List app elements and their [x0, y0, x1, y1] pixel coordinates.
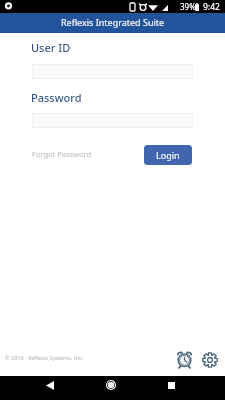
button[interactable]: Settings: [202, 352, 218, 368]
button[interactable]: Home: [99, 376, 123, 394]
staticText: 9:42: [203, 1, 220, 13]
staticText: Login: [156, 149, 180, 161]
staticText: © 2016 - Reflexis Systems, Inc.: [5, 354, 84, 361]
staticText: 39%: [180, 1, 196, 12]
button[interactable]: Back: [38, 376, 62, 394]
staticText: Reflexis Integrated Suite: [61, 16, 165, 28]
staticText: Forgot Password: [32, 149, 92, 159]
staticText: Password: [31, 90, 82, 105]
staticText: User ID: [31, 40, 71, 55]
button[interactable]: Alarm: [176, 351, 193, 368]
button[interactable]: Recents: [159, 376, 183, 394]
button[interactable]: Login: [144, 145, 192, 165]
button[interactable]: User ID input: [32, 64, 193, 79]
button[interactable]: Forgot Password: [30, 146, 94, 162]
button[interactable]: Password input: [32, 113, 193, 128]
